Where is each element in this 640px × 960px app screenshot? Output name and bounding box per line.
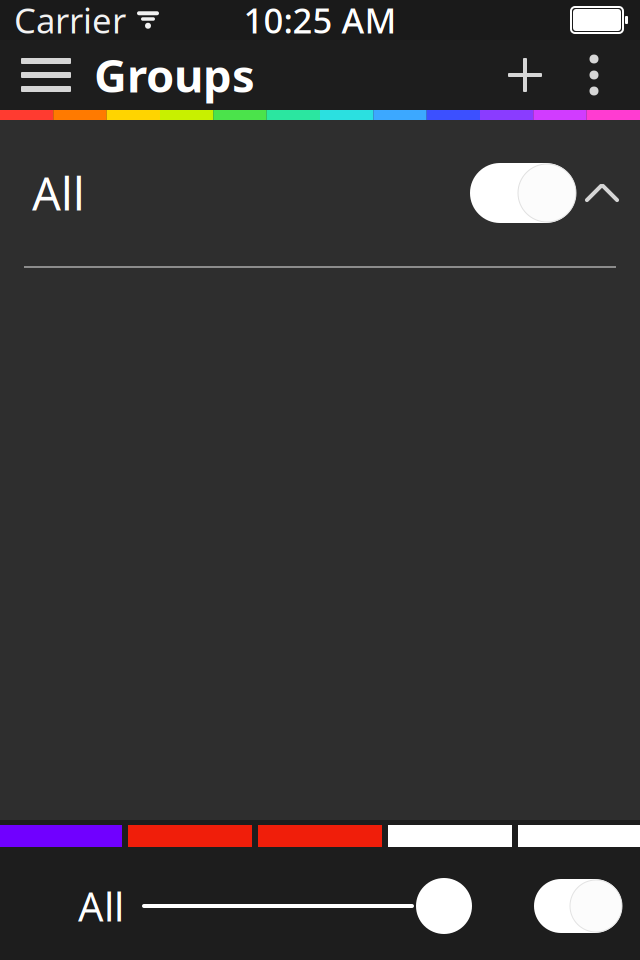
button[interactable]: Menu bbox=[10, 40, 82, 110]
button[interactable]: All bbox=[0, 120, 640, 266]
staticText: All bbox=[32, 163, 85, 223]
button[interactable]: Toggle bbox=[528, 871, 628, 941]
staticText: Carrier bbox=[14, 0, 126, 43]
button[interactable]: Slider bbox=[142, 871, 472, 941]
staticText: Groups bbox=[94, 45, 255, 105]
button[interactable]: More options bbox=[558, 40, 630, 110]
staticText: 10:25 AM bbox=[243, 0, 396, 43]
button[interactable]: Add bbox=[492, 40, 558, 110]
button[interactable]: Expand bbox=[576, 163, 628, 223]
staticText: All bbox=[78, 879, 124, 932]
